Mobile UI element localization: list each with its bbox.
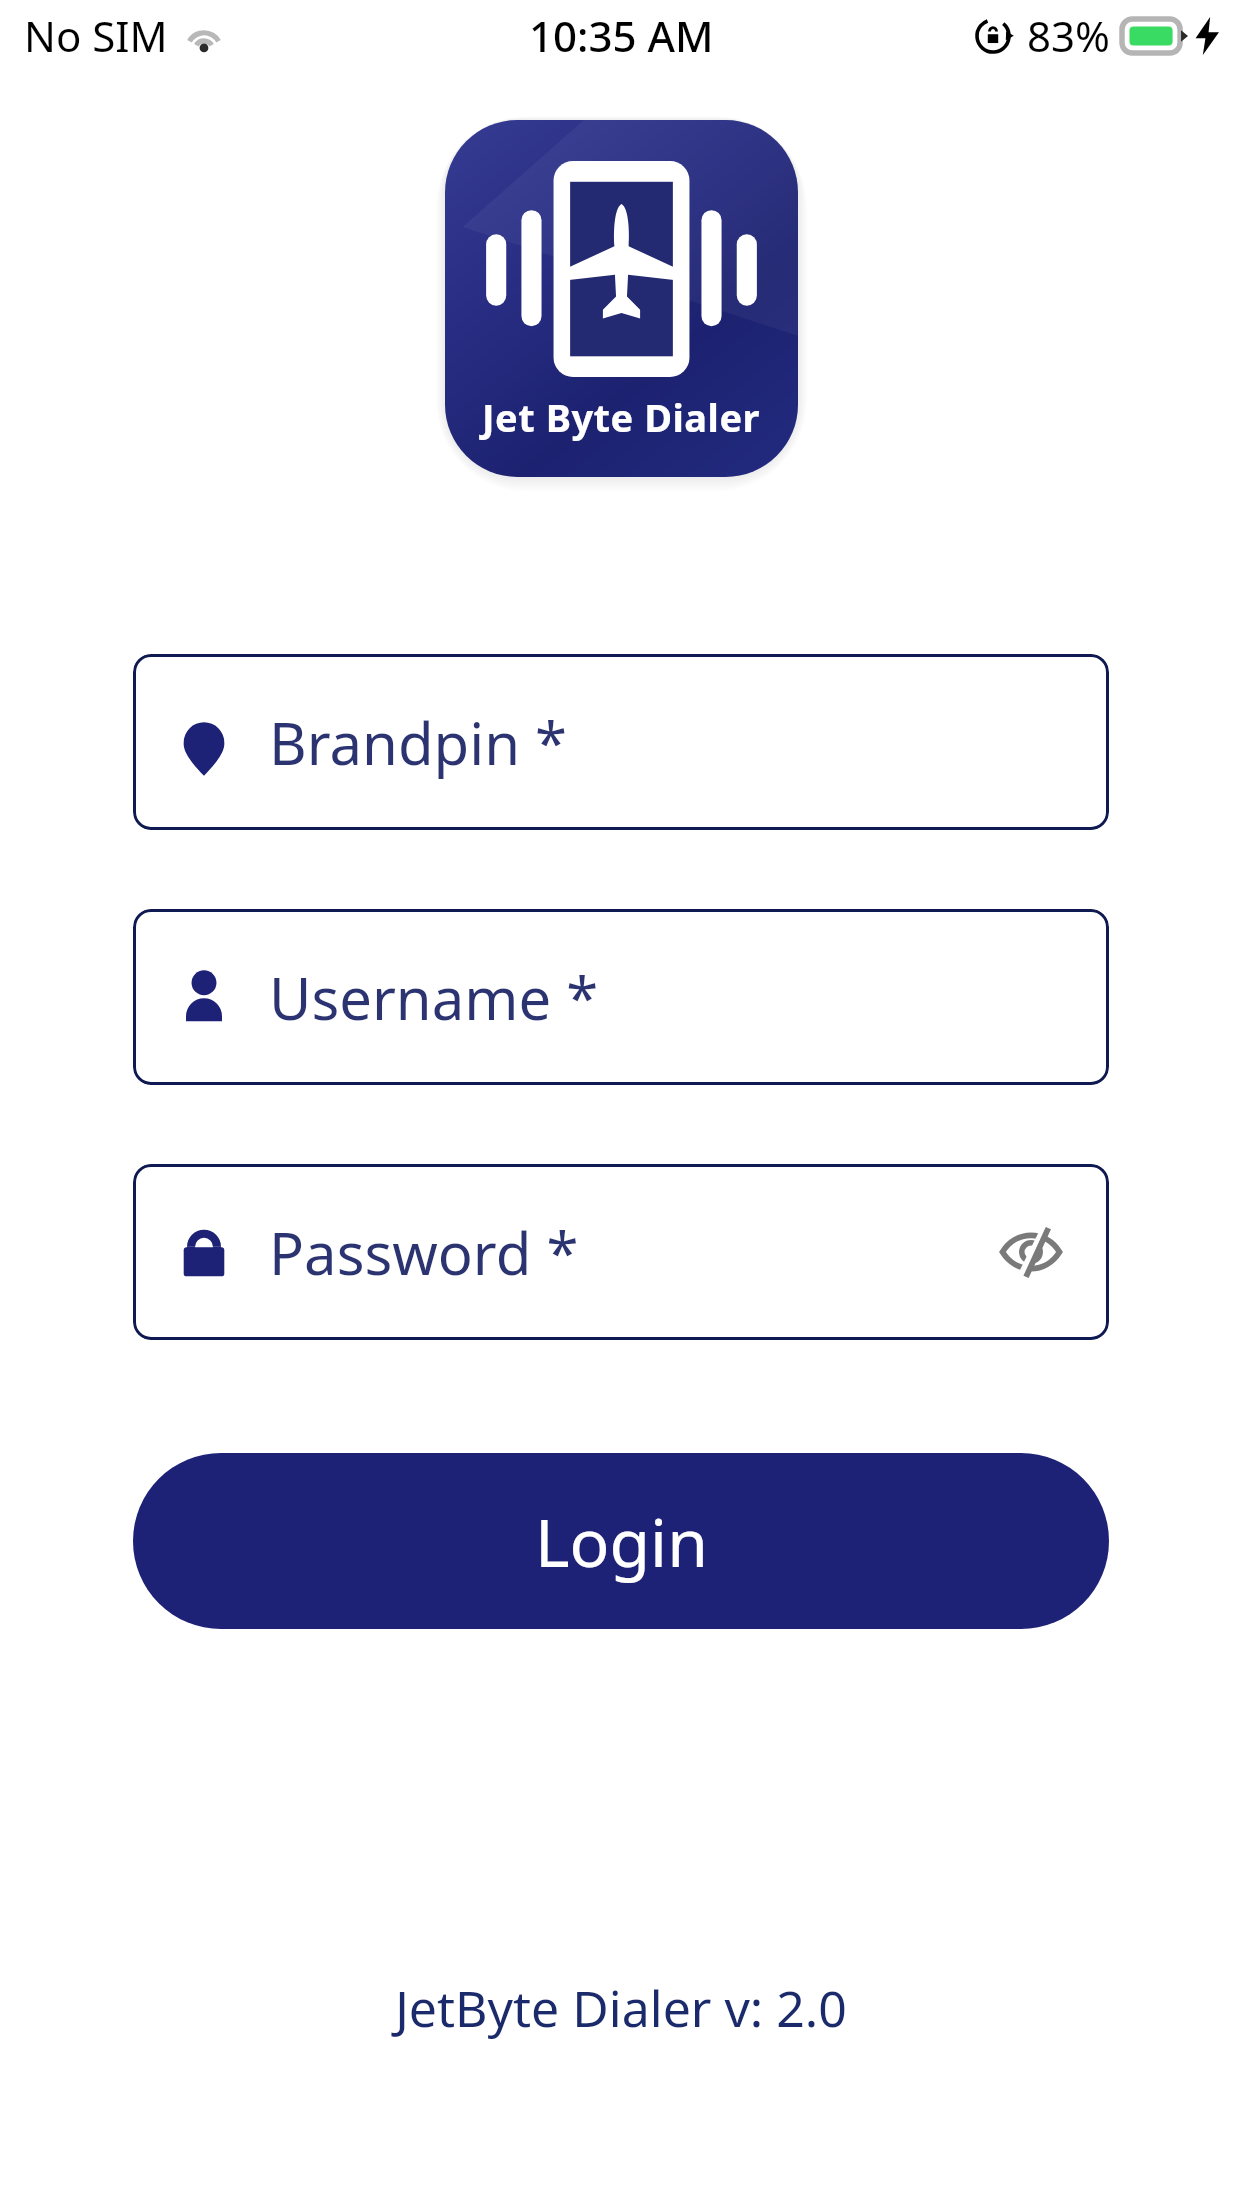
staticText: Username * [269, 958, 1067, 1037]
staticText: Jet Byte Dialer [482, 391, 761, 443]
staticText: 10:35 AM [529, 7, 714, 64]
button[interactable]: Username * [133, 909, 1109, 1085]
staticText: No SIM [24, 7, 168, 64]
button[interactable]: Login [133, 1453, 1109, 1629]
staticText: JetByte Dialer v: 2.0 [0, 1974, 1242, 2042]
button[interactable]: Brandpin * [133, 654, 1109, 830]
button[interactable]: Show password [995, 1216, 1067, 1288]
staticText: 83% [1027, 7, 1110, 64]
staticText: Brandpin * [269, 703, 1067, 782]
staticText: Login [535, 1496, 708, 1586]
staticText: Password * [269, 1213, 995, 1292]
button[interactable]: Password * [133, 1164, 1109, 1340]
